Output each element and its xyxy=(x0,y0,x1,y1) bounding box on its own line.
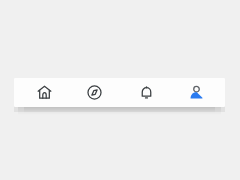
button[interactable]: Explore xyxy=(77,78,111,107)
button[interactable]: Notifications xyxy=(129,78,163,107)
button[interactable]: Profile xyxy=(179,78,213,107)
button[interactable]: Home xyxy=(27,78,61,107)
